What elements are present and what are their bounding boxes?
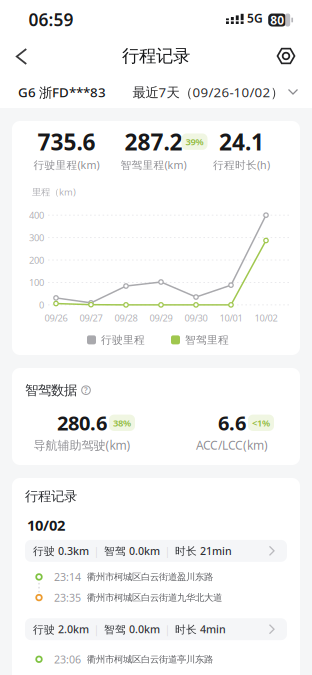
staticText: 09/28 xyxy=(114,312,137,324)
staticText: 时长 21min xyxy=(175,544,232,558)
staticText: 6.6 xyxy=(218,409,246,436)
staticText: 行程时长(h) xyxy=(213,158,270,172)
staticText: 智驾里程(km) xyxy=(120,158,186,172)
staticText: 287.2 xyxy=(124,127,182,157)
button[interactable]: Help xyxy=(81,385,91,395)
staticText: 09/27 xyxy=(79,312,102,324)
button[interactable]: 行驶 0.3km xyxy=(25,540,287,562)
staticText: 智驾 0.0km xyxy=(104,622,160,636)
staticText: 09/29 xyxy=(149,312,172,324)
button[interactable]: Settings xyxy=(271,41,301,71)
staticText: 智驾里程 xyxy=(185,333,229,346)
staticText: G6 浙FD***83 xyxy=(18,83,106,101)
staticText: | xyxy=(93,544,99,558)
staticText: 735.6 xyxy=(37,127,95,157)
staticText: 衢州市柯城区白云街道亭川东路 xyxy=(87,653,213,665)
staticText: 行驶里程(km) xyxy=(33,158,99,172)
staticText: | xyxy=(93,622,99,636)
staticText: 智驾 0.0km xyxy=(104,544,160,558)
staticText: 智驾数据 xyxy=(25,382,77,398)
button[interactable]: 最近7天（09/26-10/02） xyxy=(126,77,297,107)
staticText: 24.1 xyxy=(219,127,264,157)
staticText: 23:14 xyxy=(54,570,81,584)
staticText: 100 xyxy=(29,276,44,289)
staticText: 80 xyxy=(270,12,284,28)
staticText: 导航辅助驾驶(km) xyxy=(33,437,130,453)
staticText: 09/26 xyxy=(44,312,67,324)
staticText: 行驶 0.3km xyxy=(33,544,89,558)
staticText: 39% xyxy=(185,135,203,148)
staticText: ? xyxy=(84,385,88,395)
staticText: 最近7天（09/26-10/02） xyxy=(132,83,283,101)
staticText: 衢州市柯城区白云街道九华北大道 xyxy=(87,592,222,603)
staticText: 10/02 xyxy=(254,312,277,324)
staticText: 行驶 2.0km xyxy=(33,622,89,636)
staticText: 衢州市柯城区白云街道盈川东路 xyxy=(87,571,213,583)
button[interactable]: Back xyxy=(7,41,37,72)
staticText: 38% xyxy=(113,417,131,429)
staticText: 23:06 xyxy=(54,652,81,666)
staticText: <1% xyxy=(252,417,270,429)
staticText: 0 xyxy=(39,299,44,311)
staticText: 10/01 xyxy=(219,312,242,324)
staticText: 行程记录 xyxy=(25,488,77,504)
staticText: 06:59 xyxy=(28,8,73,31)
staticText: | xyxy=(164,622,170,636)
button[interactable]: G6 浙FD***83 xyxy=(18,77,112,107)
staticText: 10/02 xyxy=(27,515,65,535)
staticText: 200 xyxy=(29,254,44,266)
staticText: 09/30 xyxy=(184,312,207,324)
button[interactable]: 行驶 2.0km xyxy=(25,618,287,640)
staticText: 23:35 xyxy=(54,590,81,605)
staticText: 400 xyxy=(29,209,44,221)
staticText: 行程记录 xyxy=(122,45,190,67)
staticText: 里程（km) xyxy=(32,186,76,198)
staticText: 5G xyxy=(247,10,263,26)
staticText: 行驶里程 xyxy=(101,333,145,346)
staticText: ACC/LCC(km) xyxy=(196,437,268,453)
staticText: | xyxy=(164,544,170,558)
staticText: 时长 4min xyxy=(175,622,226,636)
staticText: 300 xyxy=(29,231,44,244)
staticText: 280.6 xyxy=(57,409,107,436)
